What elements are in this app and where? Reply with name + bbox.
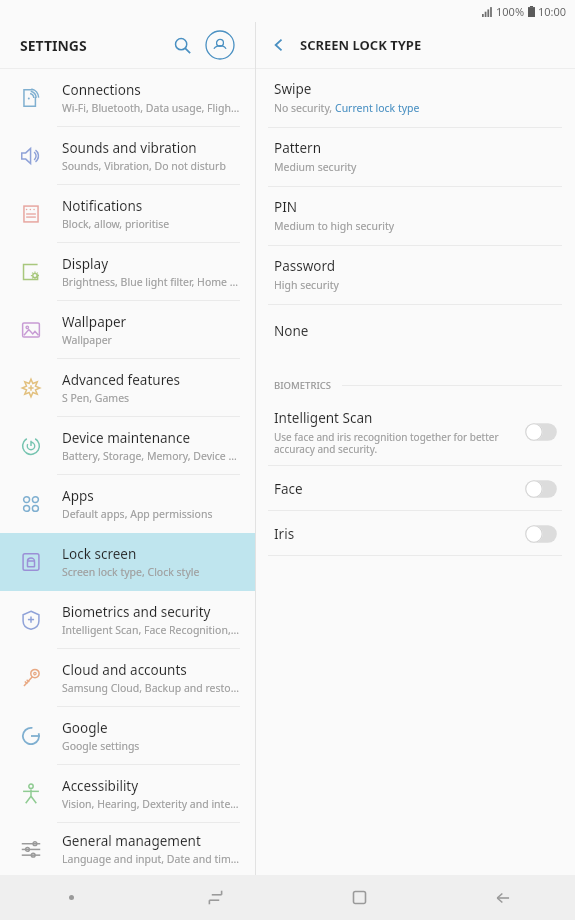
staticText: Device maintenance [62, 429, 191, 447]
button[interactable]: Menu dot [0, 875, 143, 920]
staticText: Lock screen [62, 545, 137, 563]
button[interactable]: Back [264, 30, 294, 60]
staticText: No security, [274, 101, 335, 115]
button[interactable]: Advanced features [0, 359, 255, 417]
staticText: None [274, 322, 309, 340]
button[interactable]: Pattern [256, 128, 575, 187]
staticText: General management [62, 832, 201, 850]
staticText: Apps [62, 487, 94, 505]
staticText: Wallpaper [62, 313, 127, 331]
staticText: Notifications [62, 197, 143, 215]
staticText: Screen lock type, Clock style [62, 565, 200, 579]
button[interactable]: Back [431, 875, 575, 920]
button[interactable]: Iris [256, 511, 575, 556]
staticText: Medium security [274, 160, 357, 174]
button[interactable]: Recents [143, 875, 287, 920]
staticText: Samsung Cloud, Backup and restor… [62, 681, 241, 695]
button[interactable]: PIN [256, 187, 575, 246]
button[interactable]: Home [287, 875, 431, 920]
button[interactable]: Cloud and accounts [0, 649, 255, 707]
staticText: Use face and iris recognition together f… [274, 430, 499, 456]
staticText: SCREEN LOCK TYPE [300, 36, 422, 54]
button[interactable]: Intelligent Scan [256, 398, 575, 466]
staticText: Current lock type [335, 101, 420, 115]
staticText: Language and input, Date and time,… [62, 852, 241, 866]
staticText: Biometrics and security [62, 603, 211, 621]
button[interactable]: Account [203, 28, 237, 62]
staticText: Cloud and accounts [62, 661, 187, 679]
button[interactable]: Lock screen [0, 533, 255, 591]
staticText: SETTINGS [20, 36, 87, 55]
button[interactable]: Search [165, 28, 199, 62]
button[interactable]: Apps [0, 475, 255, 533]
button[interactable]: Device maintenance [0, 417, 255, 475]
button[interactable]: Password [256, 246, 575, 305]
staticText: High security [274, 278, 339, 292]
staticText: Wallpaper [62, 333, 112, 347]
staticText: Google [62, 719, 108, 737]
staticText: Intelligent Scan, Face Recognition,… [62, 623, 239, 637]
staticText: S Pen, Games [62, 391, 130, 405]
staticText: 100% [496, 4, 525, 19]
staticText: Sounds and vibration [62, 139, 197, 157]
staticText: Medium to high security [274, 219, 395, 233]
button[interactable]: Accessibility [0, 765, 255, 823]
staticText: Face [274, 480, 303, 498]
staticText: Sounds, Vibration, Do not disturb [62, 159, 226, 173]
staticText: BIOMETRICS [274, 379, 332, 392]
button[interactable]: None [256, 305, 575, 364]
button[interactable]: General management [0, 823, 255, 875]
staticText: Advanced features [62, 371, 181, 389]
button[interactable]: Sounds and vibration [0, 127, 255, 185]
button[interactable]: Display [0, 243, 255, 301]
staticText: PIN [274, 198, 298, 216]
staticText: Block, allow, prioritise [62, 217, 170, 231]
button[interactable]: Wallpaper [0, 301, 255, 359]
staticText: Swipe [274, 80, 312, 98]
staticText: Default apps, App permissions [62, 507, 213, 521]
button[interactable]: Notifications [0, 185, 255, 243]
staticText: Accessibility [62, 777, 139, 795]
button[interactable]: Biometrics and security [0, 591, 255, 649]
staticText: Intelligent Scan [274, 409, 373, 427]
staticText: Vision, Hearing, Dexterity and intera… [62, 797, 241, 811]
staticText: Battery, Storage, Memory, Device se… [62, 449, 241, 463]
button[interactable]: Iris toggle [523, 523, 559, 545]
staticText: Iris [274, 525, 295, 543]
staticText: Google settings [62, 739, 140, 753]
staticText: Brightness, Blue light filter, Home sc… [62, 275, 241, 289]
button[interactable]: Connections [0, 69, 255, 127]
staticText: Wi-Fi, Bluetooth, Data usage, Flight… [62, 101, 241, 115]
staticText: 10:00 [538, 4, 567, 19]
staticText: Connections [62, 81, 141, 99]
button[interactable]: Google [0, 707, 255, 765]
button[interactable]: Face toggle [523, 478, 559, 500]
staticText: Password [274, 257, 336, 275]
button[interactable]: Intelligent Scan toggle [523, 421, 559, 443]
button[interactable]: Face [256, 466, 575, 511]
button[interactable]: Swipe [256, 69, 575, 128]
staticText: Display [62, 255, 109, 273]
staticText: Pattern [274, 139, 322, 157]
